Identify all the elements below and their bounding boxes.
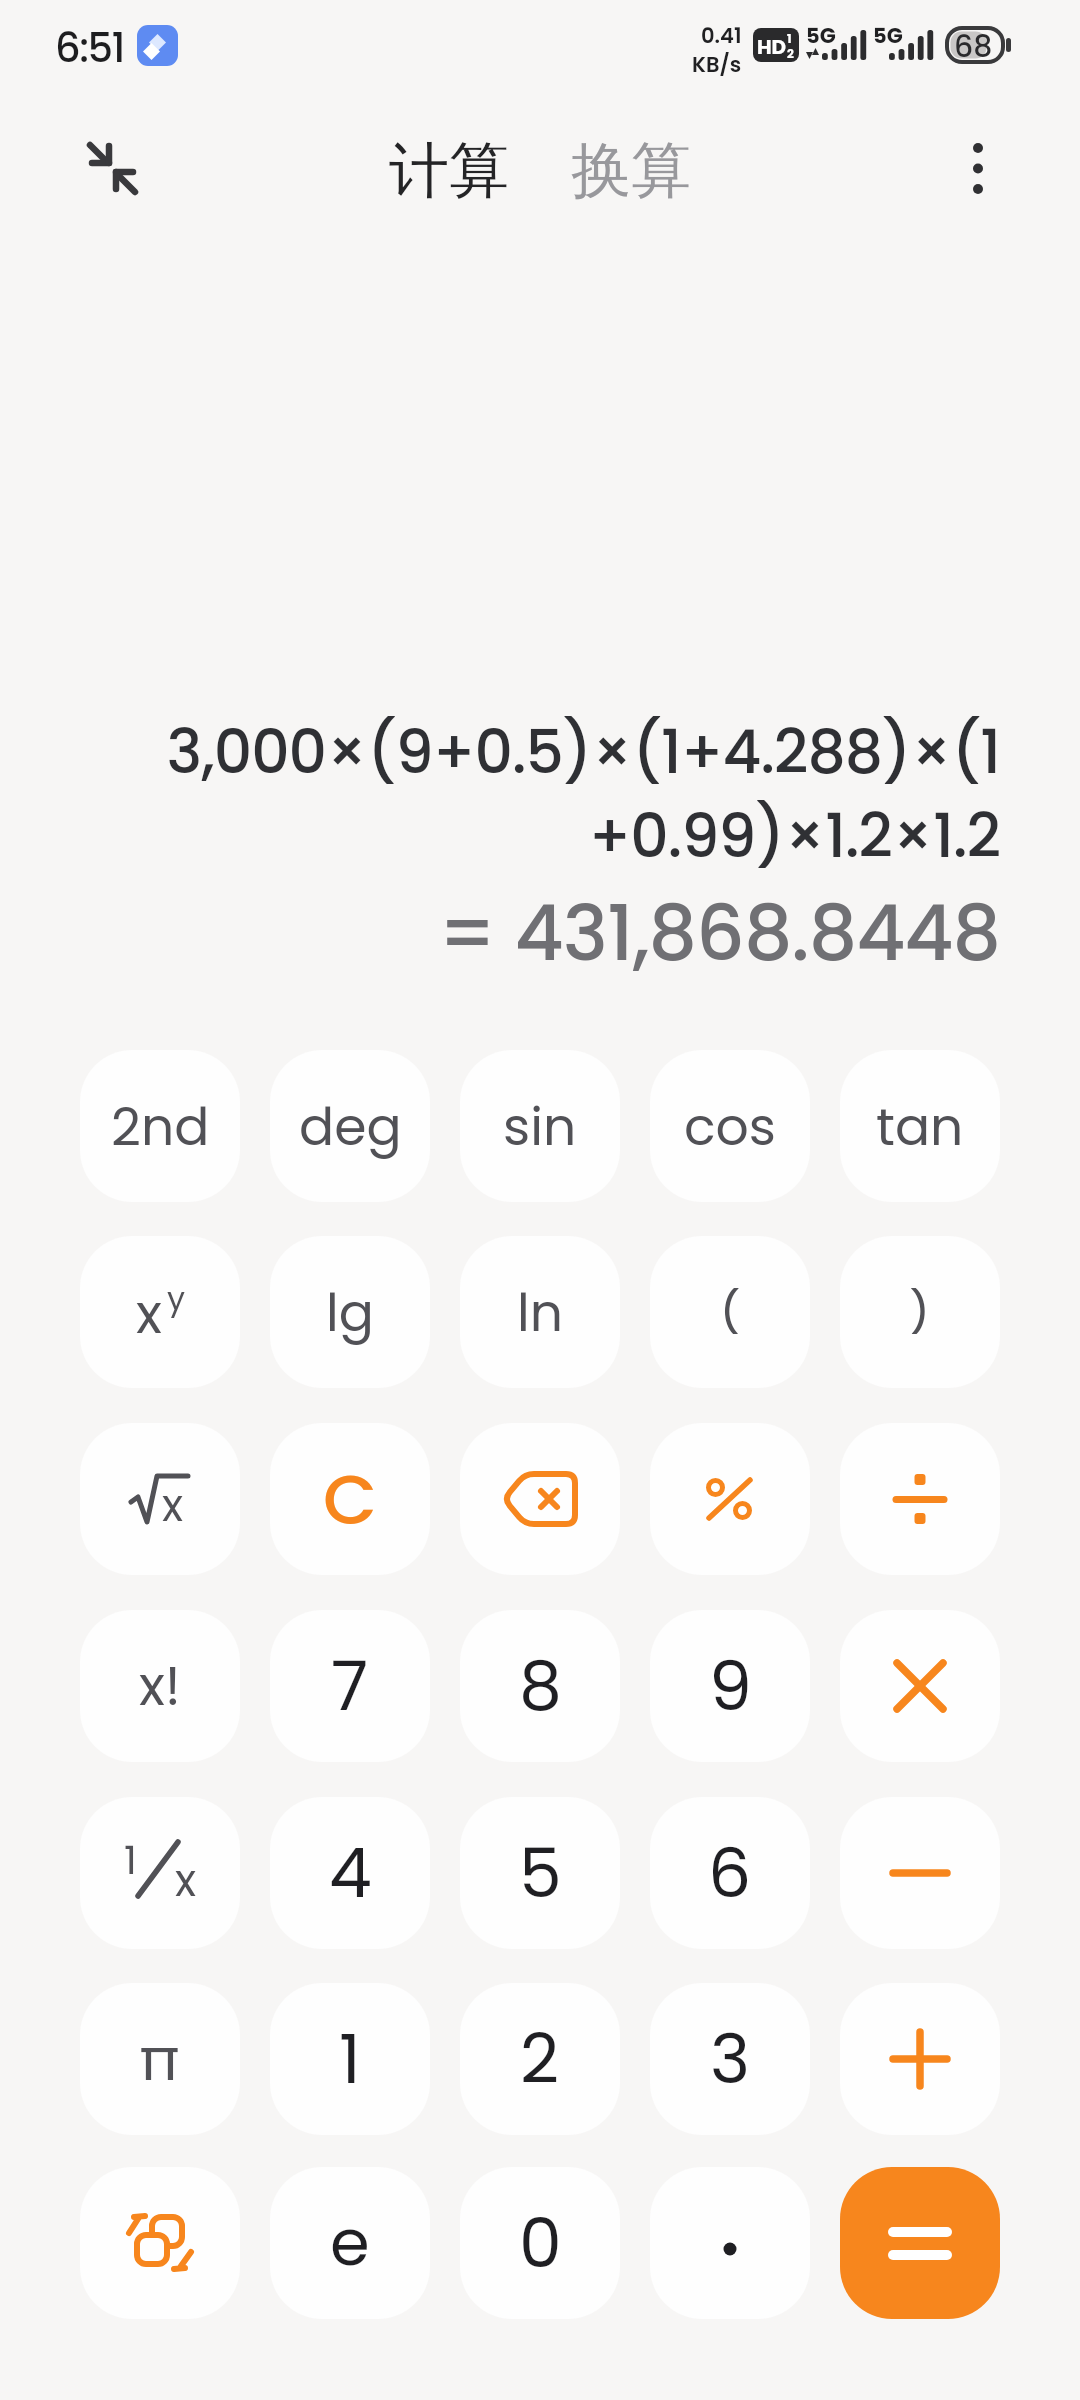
button[interactable]: 7 [270,1610,430,1762]
button[interactable]: 1 [80,1797,240,1949]
staticText: 2 [520,2012,560,2107]
staticText: HD [757,33,787,61]
staticText: 5 [519,1826,562,1921]
staticText: π [139,2019,181,2100]
button[interactable]: π [80,1983,240,2135]
staticText: x! [139,1648,181,1724]
button[interactable]: sin [460,1050,620,1202]
staticText: 5G [806,21,836,50]
staticText: sin [503,1090,577,1163]
button[interactable]: lg [270,1236,430,1388]
button[interactable]: 9 [650,1610,810,1762]
staticText: deg [299,1090,402,1163]
button[interactable] [840,1423,1000,1575]
button[interactable]: deg [270,1050,430,1202]
staticText: 9 [709,1639,752,1734]
button[interactable]: 4 [270,1797,430,1949]
button[interactable] [840,1797,1000,1949]
button[interactable]: tan [840,1050,1000,1202]
staticText: 68 [954,26,993,64]
staticText: 5G [873,21,903,50]
button[interactable]: C [270,1423,430,1575]
staticText: 3,000×(9+0.5)×(1+4.288)×(1 [166,710,1000,794]
staticText: cos [684,1090,776,1163]
button[interactable]: 换算 [571,133,691,209]
staticText: x [136,1276,162,1352]
staticText: KB/s [692,50,742,79]
button[interactable]: ) [840,1236,1000,1388]
staticText: 6:51 [55,20,125,76]
button[interactable] [650,2167,810,2319]
staticText: 2 [787,45,794,62]
button[interactable]: 5 [460,1797,620,1949]
button[interactable] [840,1983,1000,2135]
button[interactable]: e [270,2167,430,2319]
staticText: 8 [519,1639,562,1734]
staticText: 6 [708,1826,752,1921]
button[interactable]: ( [650,1236,810,1388]
button[interactable]: cos [650,1050,810,1202]
staticText: 4 [329,1826,372,1921]
button[interactable]: 0 [460,2167,620,2319]
staticText: x [175,1850,197,1912]
button[interactable] [958,128,998,208]
button[interactable]: 2 [460,1983,620,2135]
staticText: = 431,868.8448 [437,880,1000,986]
button[interactable] [840,1610,1000,1762]
button[interactable] [460,1423,620,1575]
staticText: 7 [331,1639,369,1734]
staticText: 3 [710,2012,751,2107]
button[interactable]: 8 [460,1610,620,1762]
staticText: 0.41 [701,21,742,50]
staticText: 2nd [111,1090,210,1163]
staticText: 1 [124,1832,137,1888]
button[interactable] [80,2167,240,2319]
staticText: 0 [519,2196,562,2291]
button[interactable] [650,1423,810,1575]
staticText: ) [910,1284,930,1340]
button[interactable] [85,140,141,196]
staticText: ln [517,1276,564,1349]
staticText: ( [720,1284,740,1340]
staticText: e [330,2198,370,2288]
button[interactable]: 2nd [80,1050,240,1202]
button[interactable]: 3 [650,1983,810,2135]
staticText: x [162,1475,184,1537]
button[interactable]: x! [80,1610,240,1762]
staticText: +0.99)×1.2×1.2 [588,794,1000,878]
staticText: 1 [787,30,792,47]
staticText: lg [326,1276,374,1349]
button[interactable]: x [80,1236,240,1388]
button[interactable]: 6 [650,1797,810,1949]
staticText: C [323,1450,378,1548]
staticText: tan [876,1090,964,1163]
button[interactable]: x [80,1423,240,1575]
staticText: 1 [339,2012,361,2107]
button[interactable]: 计算 [389,133,509,209]
staticText: y [167,1276,186,1321]
button[interactable]: ln [460,1236,620,1388]
button[interactable] [840,2167,1000,2319]
button[interactable]: 1 [270,1983,430,2135]
